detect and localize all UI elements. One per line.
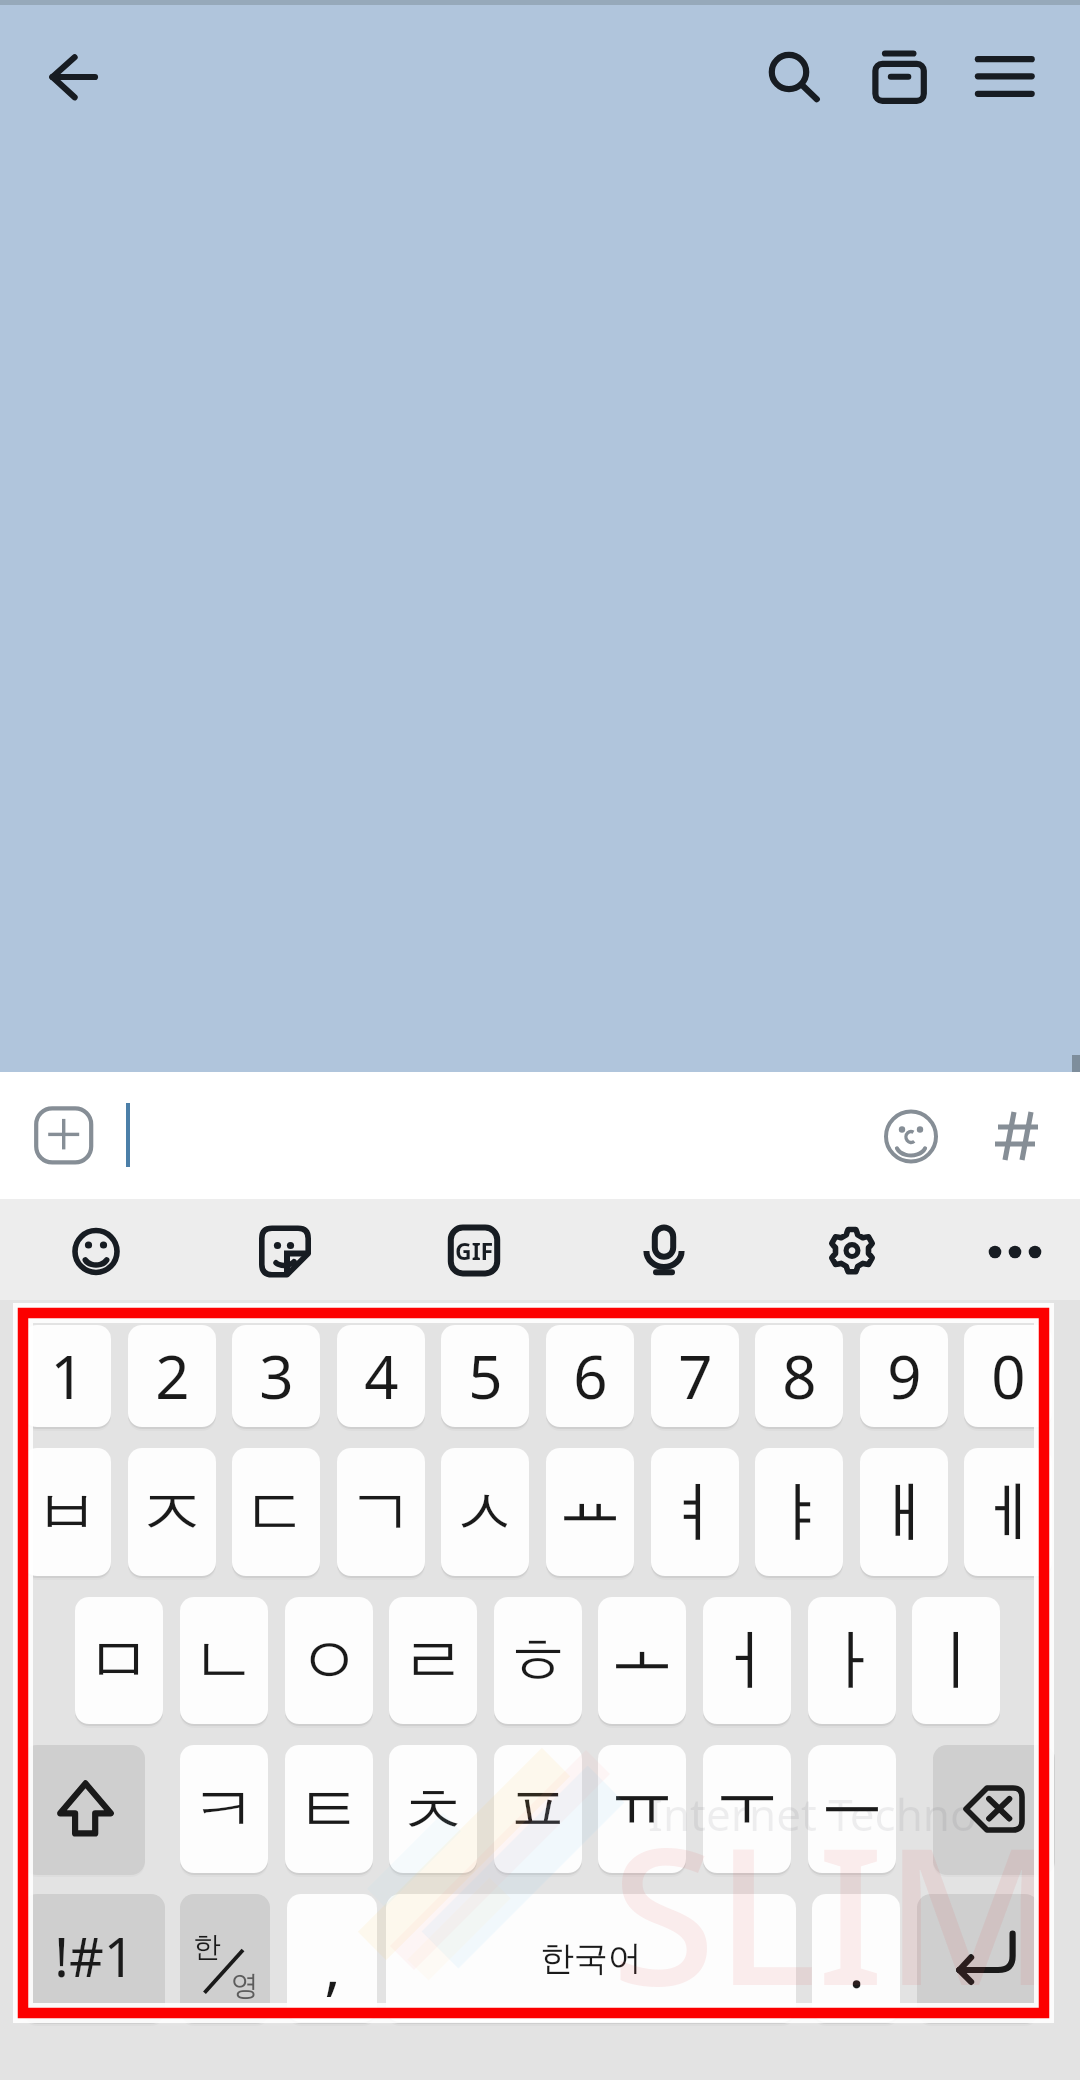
button[interactable]: ㅠ — [598, 1745, 686, 1873]
button[interactable]: ㅂ — [23, 1448, 111, 1576]
staticText: 1 — [50, 1335, 85, 1417]
staticText: ㅅ — [452, 1471, 518, 1554]
button[interactable]: Archive — [855, 32, 943, 120]
button[interactable]: Backspace — [933, 1745, 1055, 1873]
staticText: 한국어 — [540, 1937, 642, 1980]
staticText: ㅍ — [505, 1768, 571, 1851]
staticText: . — [848, 1922, 865, 2006]
button[interactable]: ㅡ — [808, 1745, 896, 1873]
button[interactable]: ㅍ — [494, 1745, 582, 1873]
staticText: GIF — [455, 1235, 494, 1266]
staticText: ㄴ — [191, 1619, 257, 1702]
button[interactable]: 5 — [441, 1325, 529, 1427]
button[interactable]: !#1 — [23, 1894, 165, 2022]
staticText: ㅡ — [819, 1751, 885, 1834]
button[interactable]: ㅣ — [912, 1597, 1000, 1724]
button[interactable]: 4 — [337, 1325, 425, 1427]
staticText: ㅜ — [714, 1754, 780, 1837]
button[interactable]: ㅅ — [441, 1448, 529, 1576]
staticText: ㅎ — [505, 1619, 571, 1702]
staticText: ㅂ — [34, 1471, 100, 1554]
button[interactable]: ㅑ — [755, 1448, 843, 1576]
staticText: ㅣ — [923, 1619, 989, 1702]
button[interactable]: Korean English toggle — [180, 1894, 270, 2022]
button[interactable]: 6 — [546, 1325, 634, 1427]
staticText: ㅌ — [296, 1768, 362, 1851]
staticText: ㄹ — [400, 1619, 466, 1702]
button[interactable]: ㅓ — [703, 1597, 791, 1724]
button[interactable]: ㄷ — [232, 1448, 320, 1576]
button[interactable]: , — [287, 1894, 377, 2022]
button[interactable]: Voice input — [620, 1205, 708, 1293]
staticText: Internet Techno — [648, 1784, 977, 1844]
staticText: 한 — [193, 1929, 221, 1964]
button[interactable]: 한국어 — [386, 1894, 796, 2022]
button[interactable]: 8 — [755, 1325, 843, 1427]
staticText: ㅈ — [139, 1471, 205, 1554]
button[interactable]: ㅁ — [75, 1597, 163, 1724]
button[interactable]: GIF — [430, 1205, 518, 1293]
staticText: ㅇ — [296, 1619, 362, 1702]
button[interactable]: Attach — [20, 1092, 108, 1180]
button[interactable]: 0 — [964, 1325, 1052, 1427]
staticText: ㅋ — [191, 1768, 257, 1851]
button[interactable]: Back — [30, 32, 118, 120]
staticText: SLIM — [611, 1782, 1059, 2041]
staticText: ㅐ — [871, 1471, 937, 1554]
button[interactable]: Enter — [917, 1894, 1039, 2022]
staticText: ㅗ — [609, 1606, 675, 1689]
button[interactable]: ㅋ — [180, 1745, 268, 1873]
button[interactable]: ㅏ — [808, 1597, 896, 1724]
staticText: 5 — [468, 1335, 503, 1417]
button[interactable]: Emoji — [52, 1205, 140, 1293]
button[interactable]: ㅔ — [964, 1448, 1052, 1576]
staticText: ㅁ — [86, 1619, 152, 1702]
staticText: 0 — [991, 1335, 1026, 1417]
staticText: ㅠ — [609, 1754, 675, 1837]
button[interactable]: Emoji — [867, 1092, 955, 1180]
button[interactable]: ㅜ — [703, 1745, 791, 1873]
button[interactable]: . — [812, 1894, 900, 2022]
button[interactable]: ㅇ — [285, 1597, 373, 1724]
button[interactable]: ㅛ — [546, 1448, 634, 1576]
button[interactable]: ㄹ — [389, 1597, 477, 1724]
button[interactable]: 3 — [232, 1325, 320, 1427]
button[interactable]: ㅈ — [128, 1448, 216, 1576]
staticText: 4 — [364, 1335, 399, 1417]
button[interactable]: 2 — [128, 1325, 216, 1427]
button[interactable]: Hashtag — [973, 1092, 1061, 1180]
button[interactable]: Settings — [808, 1205, 896, 1293]
staticText: ㅑ — [766, 1471, 832, 1554]
button[interactable]: 9 — [860, 1325, 948, 1427]
staticText: ㅔ — [975, 1471, 1041, 1554]
button[interactable]: ㄱ — [337, 1448, 425, 1576]
button[interactable]: Search — [745, 32, 833, 120]
staticText: 7 — [678, 1335, 713, 1417]
button[interactable]: ㄴ — [180, 1597, 268, 1724]
button[interactable]: ㅕ — [651, 1448, 739, 1576]
button[interactable]: ㅊ — [389, 1745, 477, 1873]
button[interactable]: ㅐ — [860, 1448, 948, 1576]
button[interactable]: More options — [971, 1205, 1059, 1293]
button[interactable]: Shift — [23, 1745, 145, 1873]
button[interactable]: Sticker — [241, 1205, 329, 1293]
button[interactable]: Menu — [955, 32, 1043, 120]
button[interactable]: ㅗ — [598, 1597, 686, 1724]
button[interactable]: ㅌ — [285, 1745, 373, 1873]
staticText: 영 — [231, 1968, 259, 2003]
staticText: ㅛ — [557, 1458, 623, 1541]
staticText: ㅕ — [662, 1471, 728, 1554]
staticText: 9 — [887, 1335, 922, 1417]
staticText: ㅓ — [714, 1619, 780, 1702]
staticText: 6 — [573, 1335, 608, 1417]
button[interactable]: 1 — [23, 1325, 111, 1427]
staticText: ㅊ — [400, 1770, 466, 1853]
staticText: 8 — [782, 1335, 817, 1417]
button[interactable]: 7 — [651, 1325, 739, 1427]
staticText: , — [324, 1923, 341, 2007]
staticText: ㄷ — [243, 1471, 309, 1554]
button[interactable]: ㅎ — [494, 1597, 582, 1724]
staticText: ㅏ — [819, 1619, 885, 1702]
staticText: !#1 — [54, 1919, 135, 1993]
staticText: 2 — [155, 1335, 190, 1417]
